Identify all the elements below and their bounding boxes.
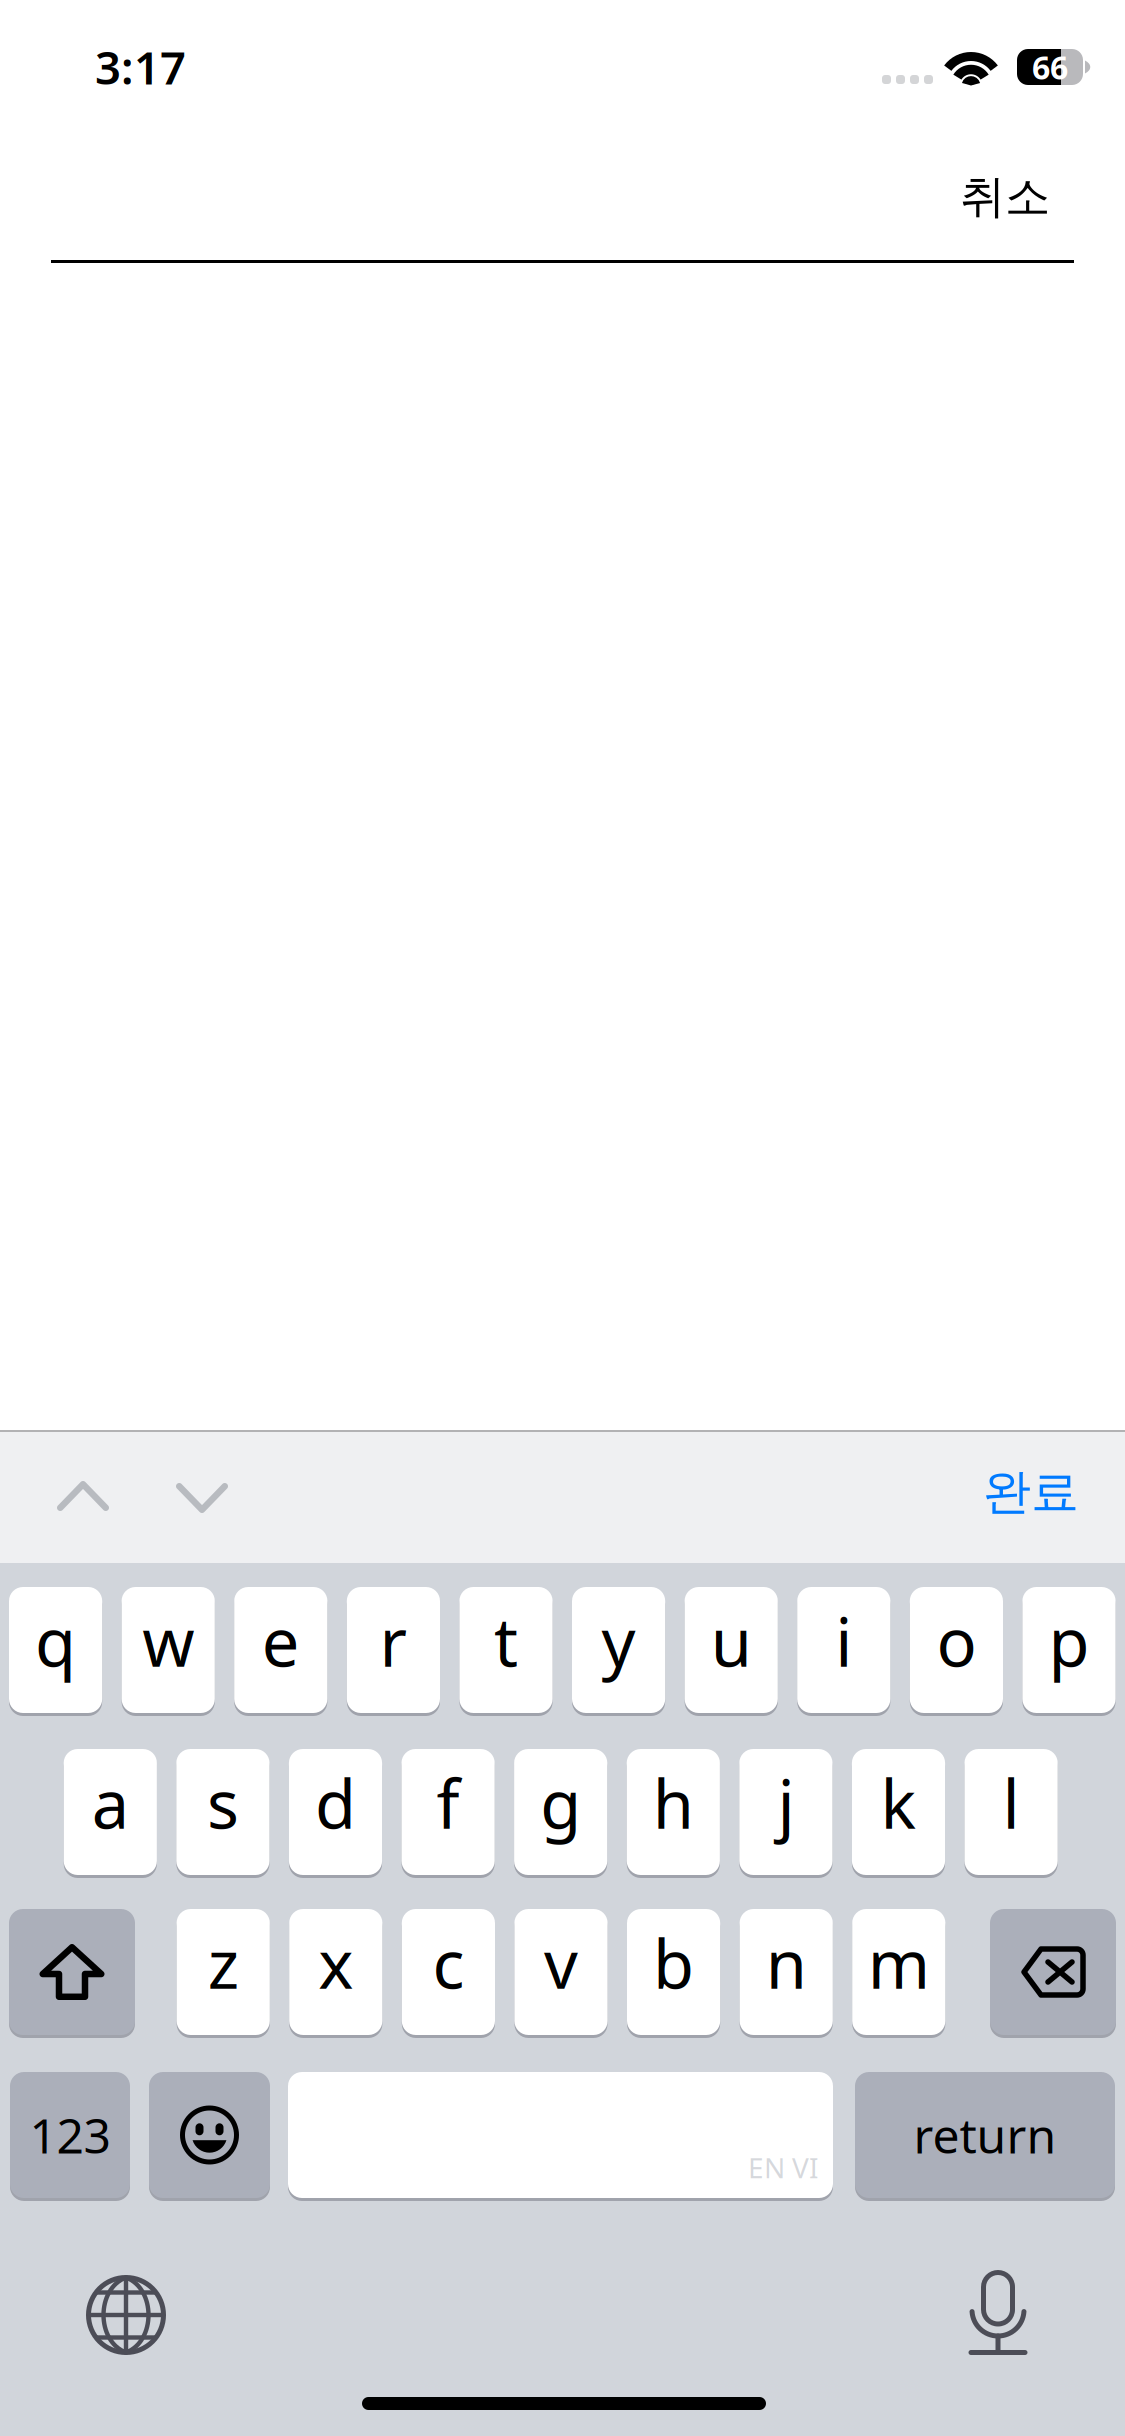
staticText: return <box>913 2103 1056 2167</box>
button[interactable]: 완료 <box>885 1462 1079 1522</box>
button[interactable]: u <box>685 1587 778 1716</box>
staticText: p <box>1048 1597 1089 1685</box>
button[interactable]: i <box>797 1587 890 1716</box>
button[interactable]: b <box>627 1909 720 2038</box>
staticText: t <box>494 1597 518 1685</box>
button[interactable]: Previous field <box>57 1481 109 1511</box>
staticText: 취소 <box>960 169 1050 225</box>
button[interactable]: 취소 <box>856 162 1050 232</box>
staticText: u <box>711 1597 752 1685</box>
button[interactable]: g <box>514 1749 607 1878</box>
staticText: g <box>540 1759 581 1847</box>
staticText: n <box>766 1919 807 2007</box>
staticText: y <box>602 1597 636 1685</box>
staticText: z <box>208 1919 239 2007</box>
staticText: e <box>262 1597 300 1685</box>
staticText: 66 <box>1032 46 1068 88</box>
button[interactable]: l <box>964 1749 1058 1878</box>
button[interactable]: n <box>740 1909 833 2038</box>
staticText: x <box>318 1919 353 2007</box>
staticText: EN VI <box>748 2149 818 2186</box>
button[interactable]: f <box>401 1749 495 1878</box>
staticText: j <box>777 1759 794 1847</box>
button[interactable]: Shift <box>9 1909 135 2038</box>
staticText: 완료 <box>983 1462 1079 1521</box>
button[interactable]: h <box>627 1749 720 1878</box>
button[interactable]: x <box>289 1909 382 2038</box>
button[interactable]: return <box>855 2072 1115 2201</box>
staticText: w <box>142 1597 194 1685</box>
staticText: 123 <box>29 2103 110 2167</box>
staticText: h <box>653 1759 694 1847</box>
button[interactable]: p <box>1022 1587 1116 1716</box>
button[interactable]: 123 <box>10 2072 130 2201</box>
staticText: l <box>1003 1759 1020 1847</box>
staticText: c <box>432 1919 464 2007</box>
button[interactable]: Next keyboard <box>86 2275 166 2355</box>
button[interactable]: w <box>122 1587 215 1716</box>
button[interactable]: o <box>910 1587 1003 1716</box>
button[interactable]: z <box>177 1909 270 2038</box>
staticText: d <box>315 1759 356 1847</box>
button[interactable]: Emoji <box>149 2072 270 2201</box>
button[interactable]: v <box>514 1909 608 2038</box>
button[interactable]: y <box>572 1587 665 1716</box>
staticText: a <box>92 1759 129 1847</box>
button[interactable]: Next field <box>176 1483 228 1513</box>
staticText: r <box>379 1597 407 1685</box>
staticText: k <box>880 1759 916 1847</box>
button[interactable]: m <box>852 1909 945 2038</box>
staticText: f <box>437 1759 460 1847</box>
staticText: s <box>207 1759 239 1847</box>
button[interactable]: q <box>9 1587 102 1716</box>
staticText: v <box>544 1919 578 2007</box>
button[interactable]: c <box>402 1909 495 2038</box>
button[interactable]: k <box>852 1749 945 1878</box>
button[interactable]: d <box>289 1749 382 1878</box>
button[interactable]: j <box>739 1749 832 1878</box>
button[interactable]: s <box>176 1749 269 1878</box>
button[interactable]: Delete <box>990 1909 1116 2038</box>
staticText: m <box>868 1919 930 2007</box>
button[interactable]: e <box>234 1587 327 1716</box>
staticText: q <box>35 1597 76 1685</box>
button[interactable]: Dictation <box>969 2270 1027 2357</box>
button[interactable]: r <box>347 1587 440 1716</box>
staticText: 3:17 <box>95 37 186 97</box>
button[interactable]: space <box>288 2072 833 2201</box>
staticText: b <box>653 1919 694 2007</box>
staticText: o <box>936 1597 976 1685</box>
button[interactable]: t <box>459 1587 553 1716</box>
button[interactable]: a <box>64 1749 157 1878</box>
staticText: i <box>835 1597 852 1685</box>
